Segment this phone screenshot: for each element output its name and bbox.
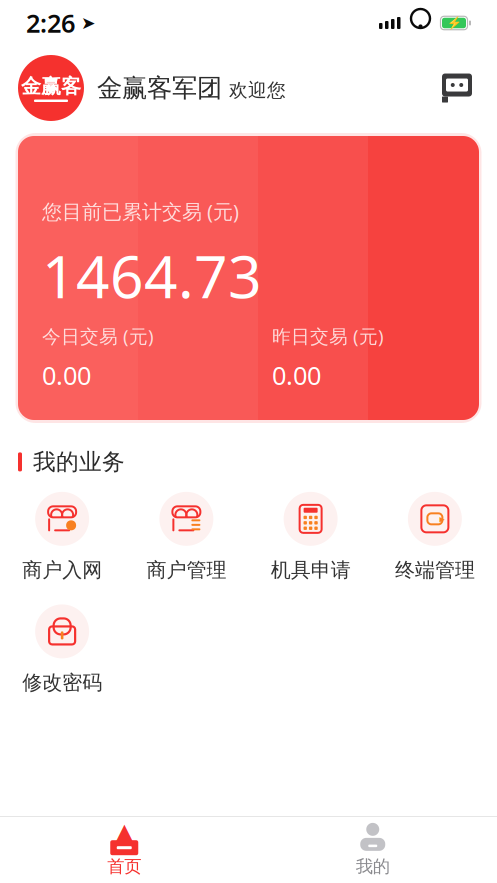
button[interactable]: ▸ [373,492,497,582]
staticText: 欢迎您 [229,79,286,102]
staticText: ▸ [439,513,444,525]
staticText: 机具申请 [271,558,351,582]
staticText: 修改密码 [22,670,102,695]
staticText: 商户入网 [22,558,102,582]
button[interactable]: 商户入网 [0,492,124,582]
staticText: 您目前已累计交易 (元) [42,198,239,225]
button[interactable]: 商户管理 [124,492,248,582]
staticText: 我的业务 [33,448,125,476]
staticText: 商户管理 [146,558,226,582]
staticText: ➤ [75,13,96,33]
staticText: ▲ [116,818,133,844]
staticText: ⚡ [446,16,461,30]
button[interactable]: 机具申请 [248,492,373,582]
button[interactable]: ▲ [0,817,248,883]
button[interactable]: 消息 [435,66,479,110]
staticText: 2:26 [26,6,75,40]
staticText: 首页 [107,856,141,877]
staticText: 1464.73 [42,237,262,314]
staticText: 0.00 [42,358,91,392]
staticText: 昨日交易 (元) [272,324,384,348]
button[interactable]: 修改密码 [0,604,124,695]
button[interactable]: 我的 [248,817,497,883]
staticText: 终端管理 [395,558,475,582]
staticText: 金赢客军团 [97,72,222,103]
staticText: 金赢客 [21,74,81,99]
staticText: 我的 [356,856,390,877]
staticText: 今日交易 (元) [42,324,154,348]
staticText: 0.00 [272,358,321,392]
